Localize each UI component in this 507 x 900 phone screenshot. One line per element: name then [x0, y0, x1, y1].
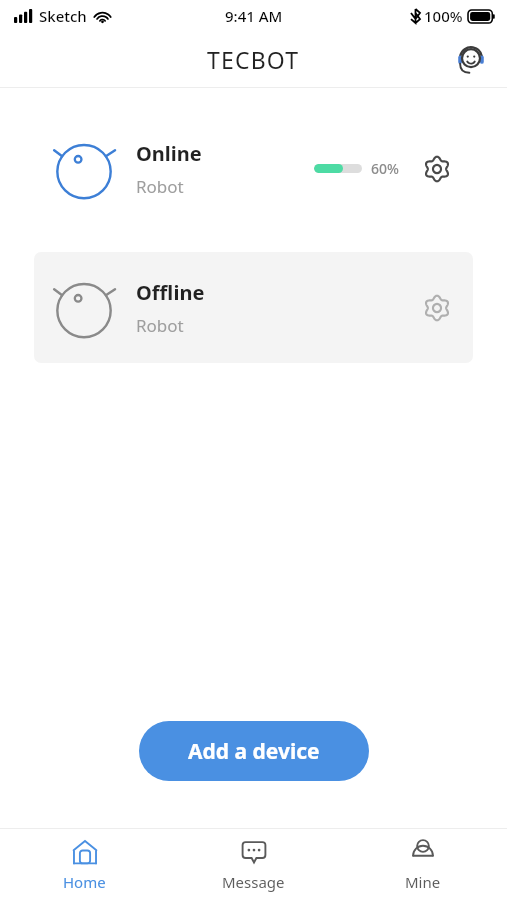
button[interactable]: Message — [169, 831, 338, 898]
staticText: 9:41 AM — [225, 6, 283, 26]
staticText: Offline — [136, 279, 205, 306]
button[interactable]: Settings — [417, 149, 457, 189]
staticText: 100% — [424, 6, 463, 26]
button[interactable]: Settings — [417, 288, 457, 328]
staticText: Add a device — [188, 737, 320, 766]
button[interactable]: Offline — [34, 252, 473, 363]
staticText: Robot — [136, 314, 184, 337]
staticText: Message — [222, 872, 285, 892]
staticText: Online — [136, 140, 202, 167]
staticText: Robot — [136, 175, 184, 198]
button[interactable]: Add a device — [139, 721, 369, 781]
button[interactable]: Customer support — [453, 42, 489, 78]
staticText: Mine — [405, 872, 441, 892]
staticText: Sketch — [39, 6, 87, 26]
staticText: Home — [63, 872, 106, 892]
staticText: 60% — [371, 159, 399, 178]
button[interactable]: Mine — [338, 831, 507, 898]
button[interactable]: Online — [34, 113, 473, 224]
button[interactable]: Home — [0, 831, 169, 898]
staticText: TECBOT — [207, 44, 300, 75]
